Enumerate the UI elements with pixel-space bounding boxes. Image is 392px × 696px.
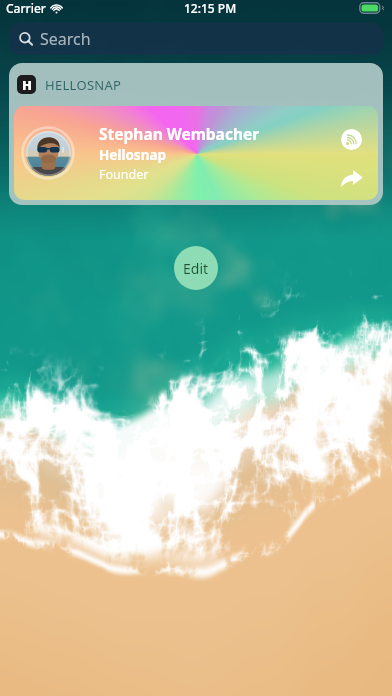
staticText: Edit: [183, 259, 209, 278]
staticText: Carrier: [6, 0, 46, 16]
button[interactable]: Share: [339, 165, 364, 190]
staticText: HELLOSNAP: [45, 76, 122, 94]
staticText: 12:15 PM: [184, 0, 237, 16]
staticText: H: [22, 76, 32, 94]
staticText: Hellosnap: [99, 146, 167, 164]
button[interactable]: Search: [9, 23, 383, 55]
button[interactable]: Follow: [341, 129, 362, 150]
button[interactable]: Edit: [174, 246, 218, 290]
staticText: Founder: [99, 166, 149, 183]
staticText: Stephan Wembacher: [99, 123, 260, 144]
staticText: Search: [40, 28, 91, 50]
